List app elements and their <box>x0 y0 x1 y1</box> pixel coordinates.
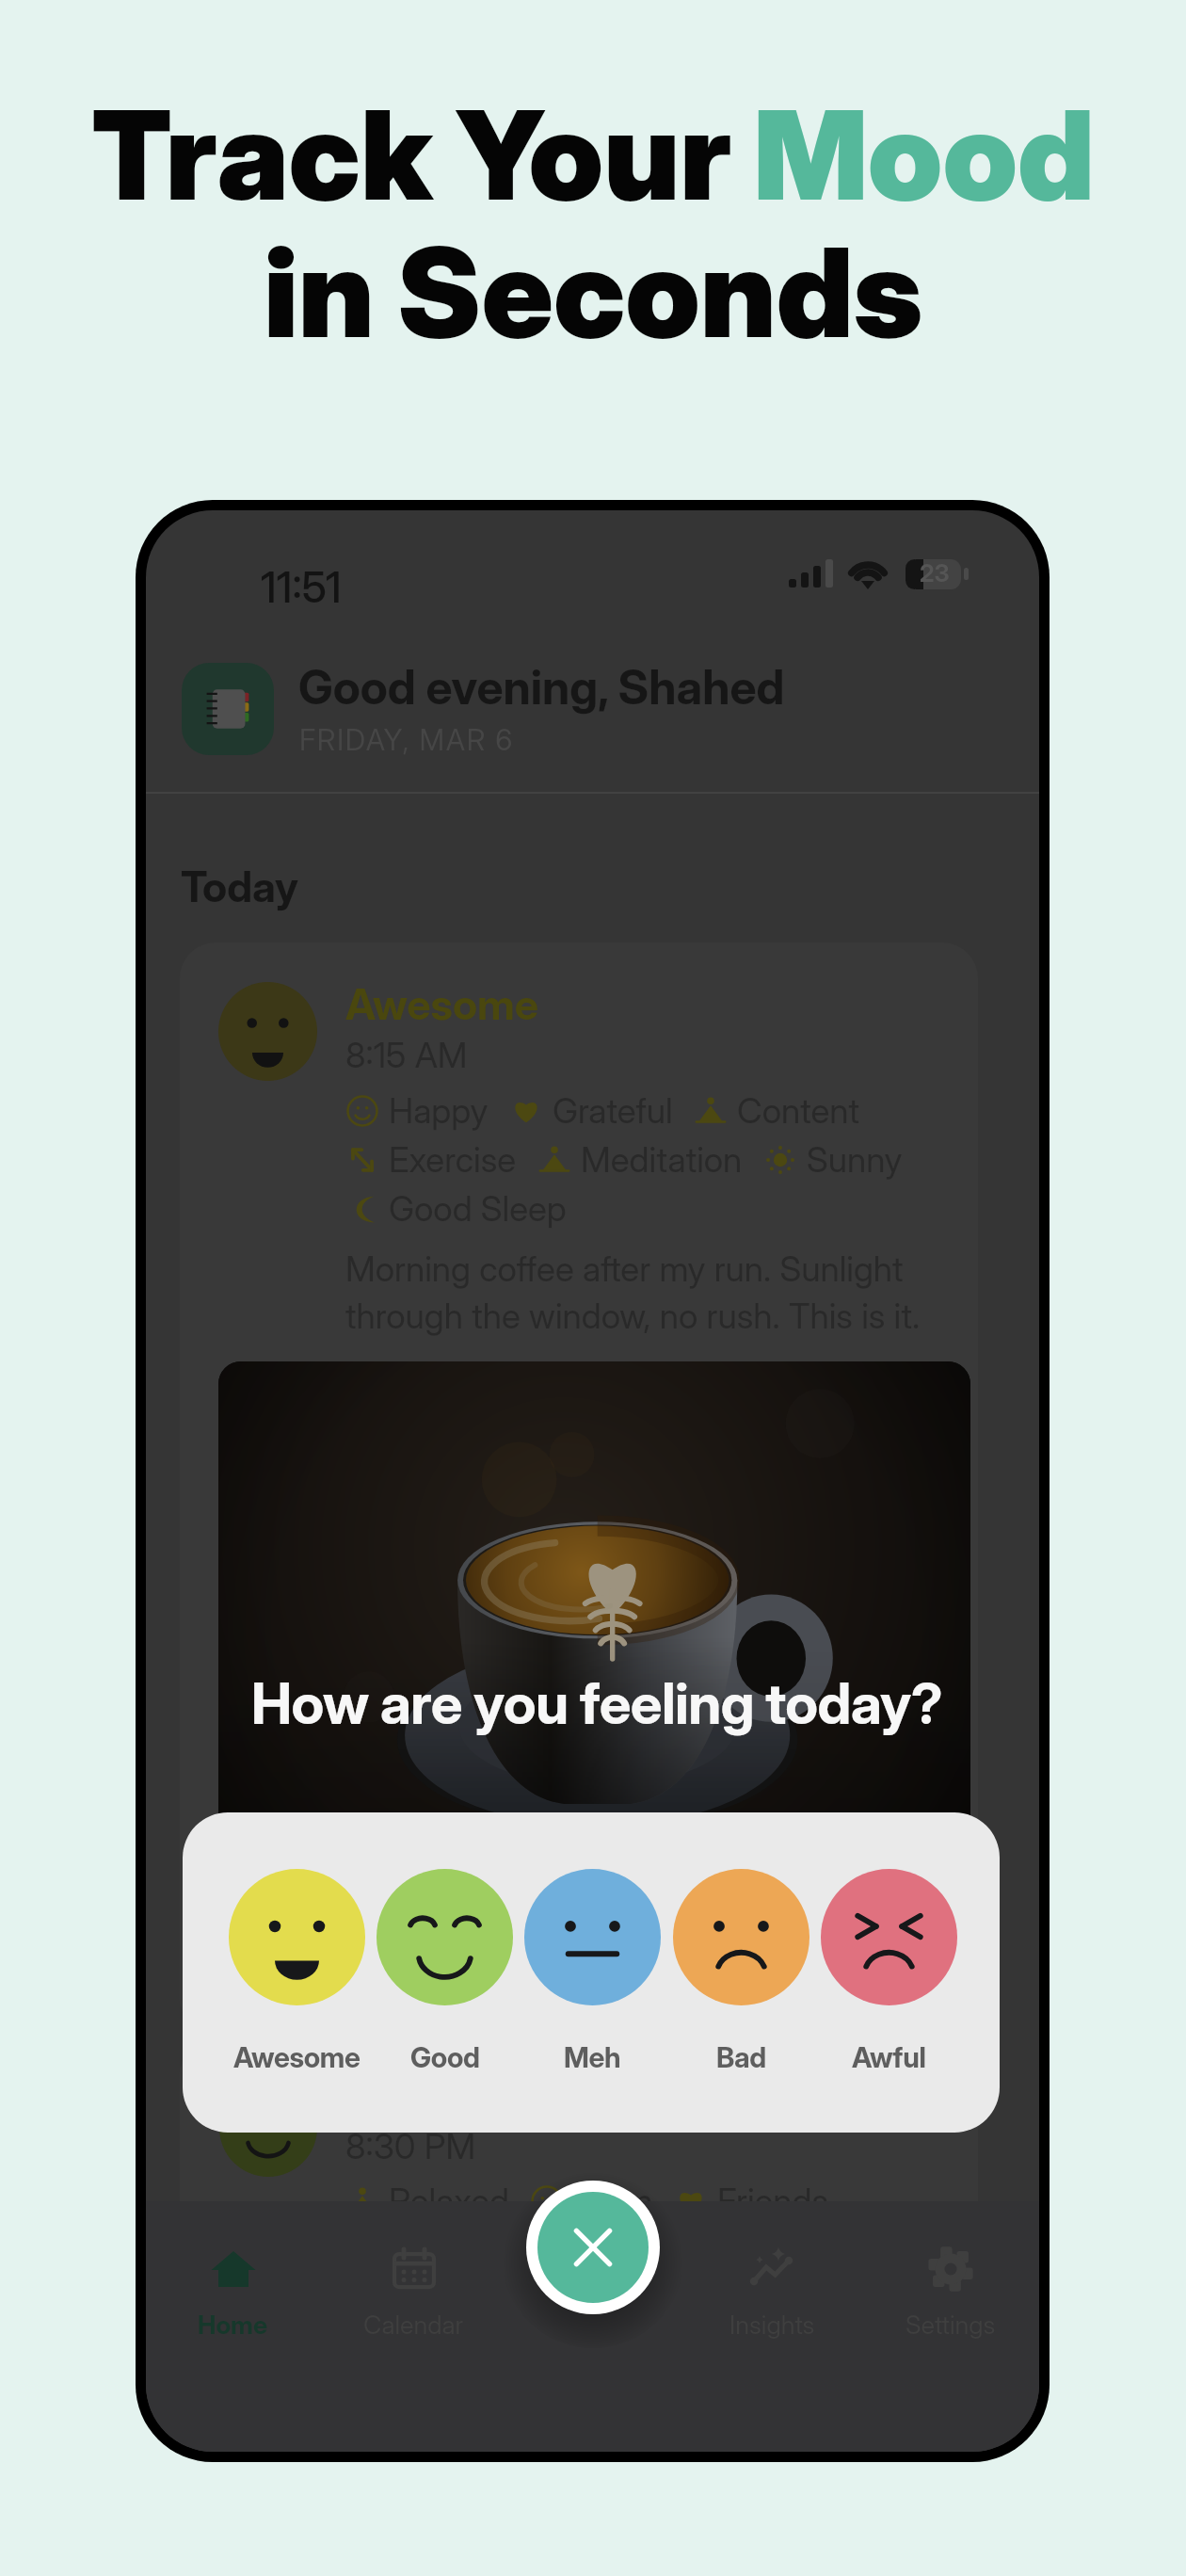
staticText: Insights <box>729 2310 815 2341</box>
button[interactable]: Settings <box>866 2246 1035 2359</box>
button[interactable]: Home <box>148 2246 317 2359</box>
button[interactable]: Good <box>364 1869 524 2104</box>
staticText: Awesome <box>233 2040 361 2074</box>
button[interactable]: Good mood entry, 8:30 PM <box>180 2038 978 2321</box>
staticText: Grateful <box>553 1089 673 1132</box>
staticText: 8:30 PM <box>345 2125 476 2167</box>
staticText: Bad <box>716 2040 766 2074</box>
button[interactable]: Meh <box>512 1869 672 2104</box>
staticText: Good evening, Shahed <box>298 659 785 716</box>
button[interactable]: Awesome mood entry, 8:15 AM <box>180 942 978 2035</box>
staticText: FRIDAY, MAR 6 <box>299 722 514 758</box>
staticText: Settings <box>906 2310 996 2341</box>
button[interactable]: Close mood picker <box>537 2192 649 2303</box>
button[interactable]: Awful <box>809 1869 969 2104</box>
staticText: Home <box>198 2310 268 2341</box>
staticText: Sunny <box>807 1138 903 1181</box>
staticText: Relaxed <box>389 2180 509 2222</box>
button[interactable]: Awesome <box>216 1869 377 2104</box>
staticText: Meditation <box>581 1138 743 1181</box>
staticText: Calm <box>573 2180 653 2222</box>
staticText: Good <box>410 2040 480 2074</box>
staticText: 8:15 AM <box>345 1034 468 1076</box>
staticText: 11:51 <box>261 561 342 612</box>
staticText: 23 <box>920 558 950 588</box>
staticText: Content <box>737 1089 859 1132</box>
staticText: Exercise <box>389 1138 517 1181</box>
staticText: Awesome <box>345 978 539 1029</box>
staticText: Calendar <box>363 2310 464 2341</box>
staticText: Friends <box>717 2180 829 2222</box>
staticText: Meh <box>564 2040 621 2074</box>
staticText: Today <box>181 861 298 911</box>
button[interactable]: Bad <box>661 1869 821 2104</box>
staticText: How are you feeling today? <box>251 1669 943 1738</box>
staticText: Happy <box>389 1089 489 1132</box>
staticText: Awful <box>852 2040 926 2074</box>
staticText: Track Your Mood in Seconds <box>0 80 1186 366</box>
staticText: Good Sleep <box>389 1187 567 1230</box>
staticText: Morning coffee after my run. Sunlight th… <box>345 1248 921 1337</box>
